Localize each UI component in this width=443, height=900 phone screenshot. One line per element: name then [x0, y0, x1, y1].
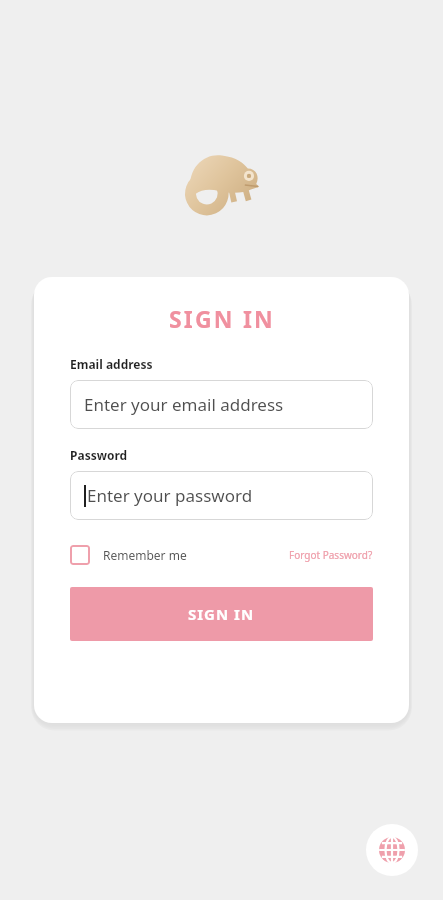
staticText: Email address — [70, 356, 153, 372]
button[interactable]: SIGN IN — [70, 587, 373, 641]
button[interactable]: Enter your email address — [70, 380, 373, 429]
button[interactable]: Forgot Password? — [289, 548, 373, 562]
staticText: SIGN IN — [169, 303, 275, 334]
staticText: Remember me — [103, 547, 187, 563]
button[interactable]: Remember me — [70, 545, 187, 565]
button[interactable]: Enter your password — [70, 471, 373, 520]
staticText: Enter your email address — [84, 393, 284, 416]
button[interactable]: Change language — [366, 824, 418, 876]
staticText: Forgot Password? — [289, 548, 373, 562]
staticText: Password — [70, 447, 128, 463]
staticText: Enter your password — [87, 484, 253, 507]
staticText: SIGN IN — [188, 604, 255, 624]
